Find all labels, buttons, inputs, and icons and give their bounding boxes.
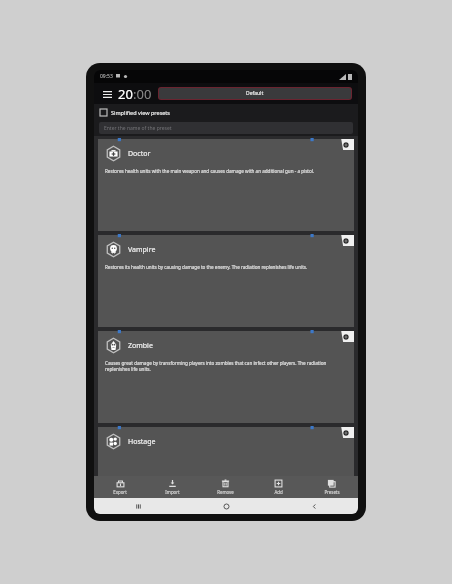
button[interactable]: Home: [182, 498, 270, 514]
staticText: Remove: [217, 489, 234, 495]
button[interactable]: Menu: [100, 87, 114, 101]
button[interactable]: Settings: [338, 139, 354, 150]
button[interactable]: Import: [146, 476, 199, 498]
staticText: Restores its health units by causing dam…: [105, 264, 308, 270]
button[interactable]: Settings: [338, 331, 354, 342]
button[interactable]: Simplified view presets: [94, 104, 358, 120]
button[interactable]: Zombie: [98, 331, 354, 423]
staticText: :00: [133, 85, 152, 103]
button[interactable]: Export: [94, 476, 146, 498]
button[interactable]: Doctor: [98, 139, 354, 231]
button[interactable]: Hostage: [98, 427, 354, 476]
button[interactable]: Back: [270, 498, 358, 514]
button[interactable]: Default: [159, 88, 351, 99]
button[interactable]: Enter the name of the preset: [99, 122, 353, 134]
staticText: Zombie: [128, 341, 153, 351]
button[interactable]: Presets: [305, 476, 358, 498]
staticText: Restores health units with the main weap…: [105, 168, 315, 174]
staticText: Import: [165, 489, 180, 495]
staticText: Default: [246, 90, 264, 97]
button[interactable]: Settings: [338, 235, 354, 246]
staticText: 09:53: [100, 73, 113, 80]
staticText: Hostage: [128, 437, 156, 447]
button[interactable]: Settings: [338, 427, 354, 438]
staticText: Enter the name of the preset: [104, 125, 172, 132]
button[interactable]: Add: [252, 476, 305, 498]
staticText: Causes great damage by transforming play…: [105, 360, 347, 372]
staticText: Export: [113, 489, 127, 495]
button[interactable]: Vampire: [98, 235, 354, 327]
button[interactable]: Remove: [199, 476, 252, 498]
staticText: Simplified view presets: [111, 109, 170, 116]
staticText: Vampire: [128, 245, 156, 255]
button[interactable]: Recents: [94, 498, 182, 514]
staticText: 20: [118, 85, 133, 103]
staticText: Presets: [324, 489, 340, 495]
staticText: Doctor: [128, 149, 151, 159]
staticText: Add: [274, 489, 283, 495]
